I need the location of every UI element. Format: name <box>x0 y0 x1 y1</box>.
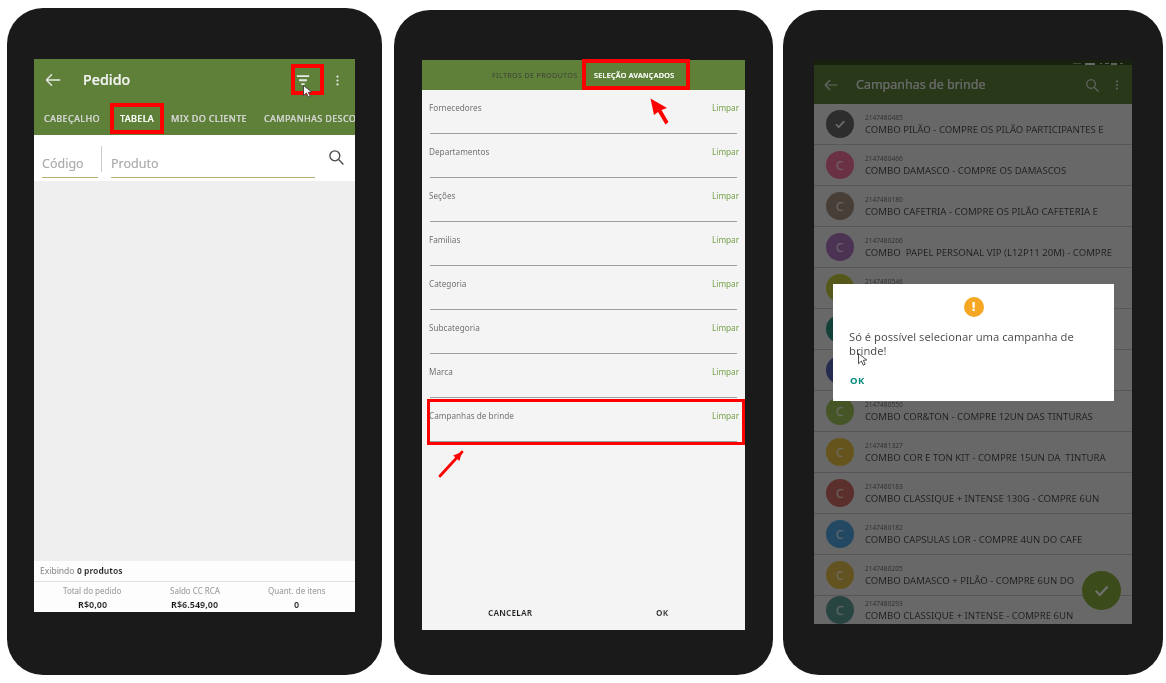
staticText: Produto <box>111 155 159 172</box>
button[interactable]: CAMPANHAS DESCONTO <box>257 100 355 135</box>
button[interactable]: MIX DO CLIENTE <box>164 100 254 135</box>
button[interactable]: Marca <box>422 354 745 398</box>
button[interactable]: More options <box>325 68 349 92</box>
staticText: Limpar <box>712 146 740 157</box>
button[interactable]: OK <box>586 594 739 630</box>
button[interactable]: Search <box>1078 71 1106 99</box>
staticText: Quant. de itens <box>268 585 326 596</box>
staticText: 2147480182 <box>865 523 903 532</box>
staticText: COMBO CABELO LISO - COMPRE 4UN <box>865 287 1033 300</box>
staticText: Marca <box>429 366 453 377</box>
staticText: COMBO CAFE TORRADO - COMPRE 3UN <box>865 328 1044 341</box>
staticText: Pedido <box>83 70 131 89</box>
button[interactable]: SELEÇÃO AVANÇADOS <box>588 64 681 86</box>
button[interactable]: OK <box>850 374 865 387</box>
button[interactable]: FILTROS DE PRODUTOS <box>486 64 584 86</box>
staticText: COMBO COR E TON KIT - COMPRE 15UN DA TIN… <box>865 451 1106 464</box>
staticText: 2147480293 <box>865 599 903 608</box>
staticText: CAMPANHAS DESCONTO <box>264 112 355 124</box>
staticText: C <box>836 198 844 214</box>
staticText: SELEÇÃO AVANÇADOS <box>594 70 675 80</box>
staticText: COMBO COR&TON - COMPRE 12UN DAS TINTURAS <box>865 410 1093 423</box>
staticText: C <box>836 444 844 460</box>
staticText: C <box>836 485 844 501</box>
staticText: COMBO DAMASCO - COMPRE OS DAMASCOS <box>865 164 1067 177</box>
staticText: Limpar <box>712 410 740 421</box>
button[interactable]: C <box>814 473 1132 513</box>
staticText: 0 <box>294 598 300 610</box>
staticText: OK <box>850 374 865 387</box>
staticText: Subcategoria <box>429 322 480 333</box>
staticText: Campanhas de brinde <box>429 410 514 421</box>
staticText: C <box>836 567 844 583</box>
staticText: MIX DO CLIENTE <box>171 112 247 124</box>
button[interactable]: Filter <box>287 64 319 96</box>
button[interactable]: C <box>814 514 1132 554</box>
staticText: 2147480205 <box>865 564 903 573</box>
button[interactable]: C <box>814 596 1132 624</box>
staticText: C <box>836 602 844 618</box>
button[interactable]: CANCELAR <box>434 594 586 630</box>
staticText: COMBO PAPEL PERSONAL VIP (L12P11 20M) - … <box>865 246 1112 259</box>
button[interactable]: C <box>814 145 1132 185</box>
staticText: 2147481327 <box>865 441 903 450</box>
staticText: R$0,00 <box>78 598 108 610</box>
staticText: Só é possível selecionar uma campanha de… <box>849 329 1098 359</box>
button[interactable]: TABELA <box>113 100 162 135</box>
button[interactable]: C <box>814 432 1132 472</box>
button[interactable]: Back <box>37 64 69 96</box>
staticText: COMBO CAPSULAS LOR - COMPRE 4UN DO CAFE <box>865 533 1083 546</box>
button[interactable]: C <box>814 350 1132 390</box>
staticText: Limpar <box>712 322 740 333</box>
button[interactable]: Search <box>323 144 349 170</box>
staticText: Seções <box>429 190 456 201</box>
staticText: ! <box>972 299 976 315</box>
staticText: 2147480183 <box>865 482 903 491</box>
button[interactable]: Campanhas de brinde <box>422 398 745 442</box>
staticText: FILTROS DE PRODUTOS <box>492 70 578 80</box>
staticText: 2147480485 <box>865 113 903 122</box>
staticText: COMBO CAFETRIA - COMPRE OS PILÃO CAFETER… <box>865 205 1098 218</box>
button[interactable]: CABEÇALHO <box>37 100 107 135</box>
staticText: R$6.549,00 <box>171 598 219 610</box>
staticText: Categoria <box>429 278 467 289</box>
staticText: Total do pedido <box>63 585 122 596</box>
staticText: 2147480548 <box>865 359 903 368</box>
staticText: C <box>836 280 844 296</box>
button[interactable]: C <box>814 555 1132 595</box>
staticText: Familias <box>429 234 461 245</box>
button[interactable]: C <box>814 391 1132 431</box>
staticText: 0 produtos <box>77 565 123 577</box>
button[interactable]: More options <box>1106 74 1128 96</box>
button[interactable]: Departamentos <box>422 134 745 178</box>
button[interactable]: Categoria <box>422 266 745 310</box>
staticText: C <box>836 239 844 255</box>
staticText: Limpar <box>712 366 740 377</box>
staticText: Código <box>42 155 84 172</box>
staticText: C <box>836 157 844 173</box>
staticText: Limpar <box>712 278 740 289</box>
button[interactable]: Confirm selection <box>1082 571 1121 610</box>
button[interactable]: C <box>814 268 1132 308</box>
button[interactable]: Seções <box>422 178 745 222</box>
button[interactable]: C <box>814 227 1132 267</box>
staticText: CABEÇALHO <box>44 112 100 124</box>
button[interactable]: Back <box>816 70 846 100</box>
staticText: Limpar <box>712 234 740 245</box>
staticText: 2147480266 <box>865 236 903 245</box>
staticText: 2147480546 <box>865 277 903 286</box>
staticText: Limpar <box>712 102 740 113</box>
button[interactable]: Fornecedores <box>422 90 745 134</box>
button[interactable]: Subcategoria <box>422 310 745 354</box>
staticText: C <box>836 526 844 542</box>
button[interactable]: 2147480485 <box>814 104 1132 144</box>
button[interactable]: Familias <box>422 222 745 266</box>
staticText: OK <box>656 607 669 618</box>
button[interactable]: C <box>814 186 1132 226</box>
staticText: Exibindo <box>40 565 77 577</box>
button[interactable]: C <box>814 309 1132 349</box>
staticText: TABELA <box>120 112 155 124</box>
